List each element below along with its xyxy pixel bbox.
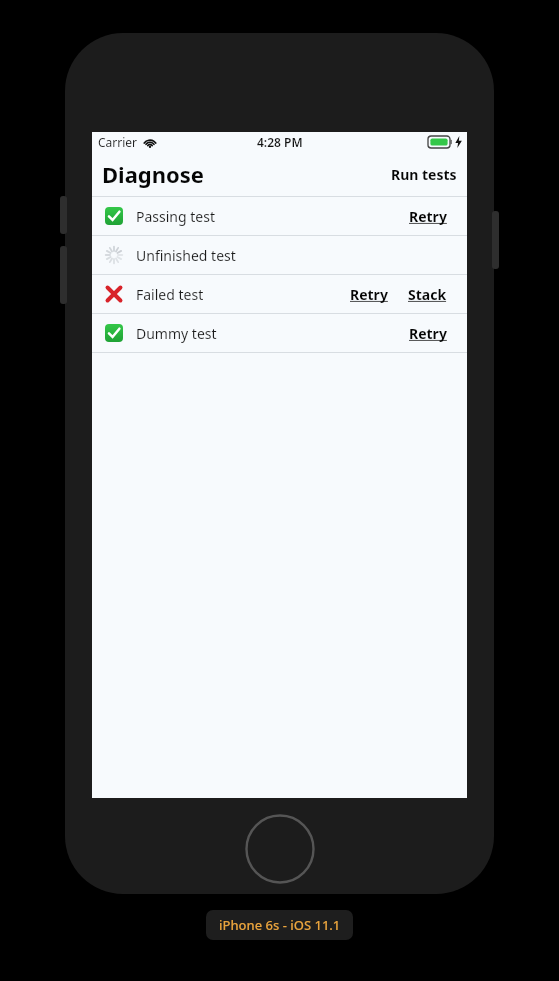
button[interactable]: Unfinished test: [92, 236, 467, 274]
button[interactable]: Stack: [398, 279, 457, 310]
staticText: Dummy test: [136, 324, 217, 343]
button[interactable]: Retry: [399, 201, 457, 232]
staticText: Stack: [408, 285, 447, 304]
staticText: 4:28 PM: [257, 134, 303, 150]
button[interactable]: Failed test: [92, 275, 467, 313]
button[interactable]: Retry: [340, 279, 398, 310]
button[interactable]: Passing test: [92, 197, 467, 235]
staticText: Diagnose: [102, 159, 204, 189]
staticText: Retry: [409, 207, 447, 226]
staticText: Retry: [409, 324, 447, 343]
button[interactable]: Retry: [399, 318, 457, 349]
staticText: iPhone 6s - iOS 11.1: [219, 916, 341, 934]
staticText: Failed test: [136, 285, 204, 304]
button[interactable]: Run tests: [381, 159, 467, 190]
other: Home: [245, 814, 315, 884]
staticText: Run tests: [391, 165, 457, 184]
staticText: Carrier: [98, 134, 138, 150]
staticText: Unfinished test: [136, 246, 236, 265]
staticText: Passing test: [136, 207, 215, 226]
button[interactable]: Dummy test: [92, 314, 467, 352]
staticText: Retry: [350, 285, 388, 304]
